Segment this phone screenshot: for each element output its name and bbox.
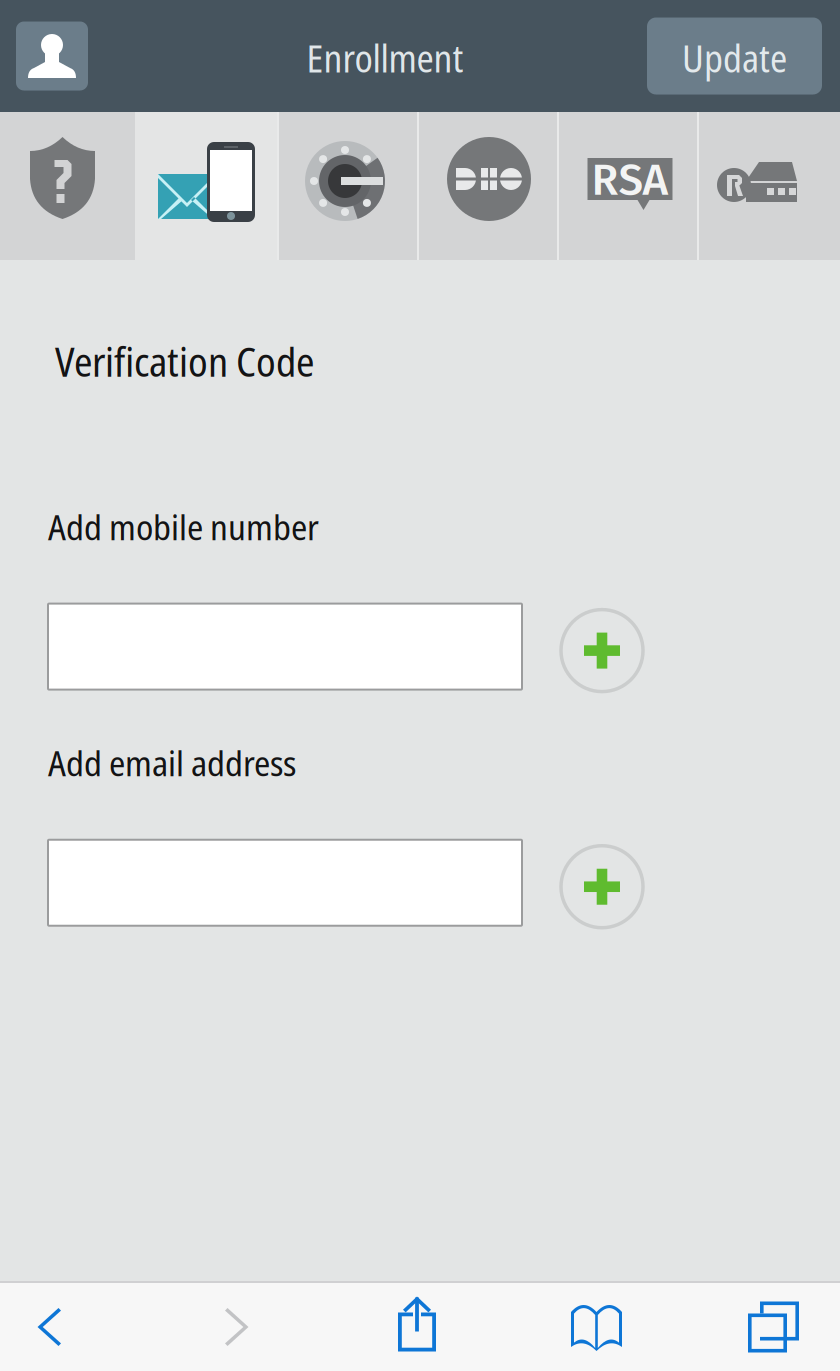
button[interactable]: Back	[0, 1283, 109, 1371]
staticText: Verification Code	[55, 334, 314, 388]
button[interactable]: Share	[347, 1283, 487, 1371]
staticText: Enrollment	[306, 33, 463, 83]
button[interactable]: Text field	[48, 604, 522, 690]
button[interactable]: RSA token	[558, 112, 698, 260]
staticText: Add email address	[48, 739, 296, 787]
staticText: Update	[682, 33, 787, 83]
button[interactable]: Text field	[48, 840, 522, 926]
button[interactable]: Bookmarks	[526, 1283, 666, 1371]
staticText: RSA	[591, 154, 668, 206]
button[interactable]: Add	[556, 605, 648, 697]
button[interactable]: Add	[556, 841, 648, 933]
button[interactable]: SMS or email code	[135, 112, 278, 260]
button[interactable]: Authenticator app	[278, 112, 418, 260]
button[interactable]: Tabs	[703, 1283, 840, 1371]
staticText: Add mobile number	[48, 502, 319, 551]
button[interactable]: Hardware token	[698, 112, 840, 260]
button[interactable]: Profile	[16, 21, 88, 90]
button[interactable]: Duo	[418, 112, 558, 260]
button[interactable]: Help	[0, 112, 135, 260]
button[interactable]: Forward	[176, 1283, 296, 1371]
button[interactable]: Update	[647, 17, 822, 94]
